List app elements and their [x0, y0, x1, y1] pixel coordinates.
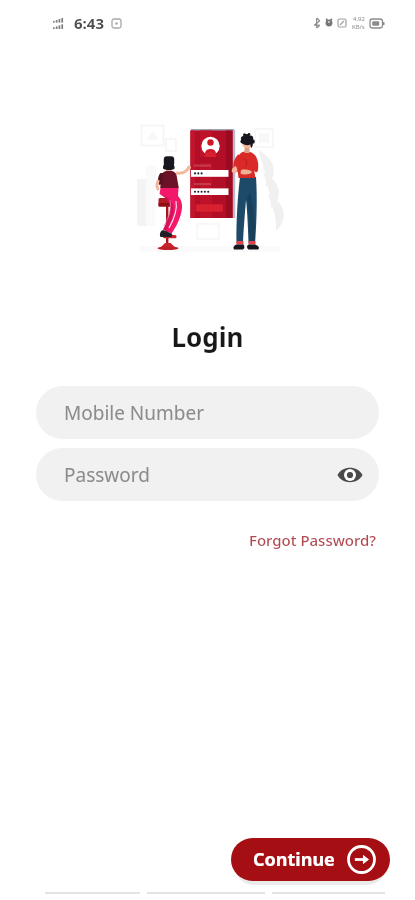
button[interactable]: Mobile Number — [36, 386, 379, 439]
button[interactable]: Continue — [231, 838, 390, 881]
staticText: Continue — [253, 847, 335, 872]
button[interactable]: Forgot Password? — [249, 530, 377, 550]
button[interactable]: Password — [36, 448, 379, 501]
staticText: 4.92 — [353, 15, 365, 23]
staticText: 6:43 — [74, 13, 104, 33]
staticText: KB/s — [352, 23, 365, 31]
button[interactable]: Show password — [335, 460, 365, 490]
staticText: Login — [0, 319, 415, 354]
staticText: Mobile Number — [64, 400, 205, 426]
staticText: Password — [64, 462, 150, 488]
